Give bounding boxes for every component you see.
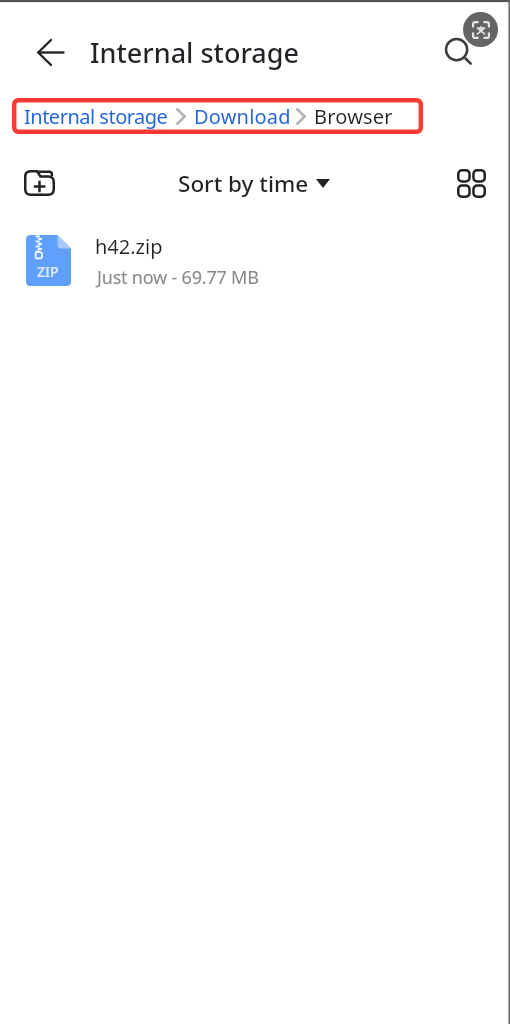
staticText: h42.zip [95,233,163,260]
button[interactable]: Internal storage [12,98,168,134]
staticText: Download [194,103,291,130]
button[interactable]: Translate [463,12,498,47]
staticText: Internal storage [90,34,299,71]
button[interactable]: New folder [14,157,65,208]
staticText: Sort by time [178,168,309,199]
staticText: Internal storage [24,103,168,130]
button[interactable]: Download [194,98,291,134]
staticText: Browser [314,103,393,130]
button[interactable]: Grid view [445,157,496,208]
button[interactable]: Search [434,27,488,81]
staticText: ZIP [37,262,59,281]
button[interactable]: Back [24,25,78,79]
button[interactable]: ZIP [0,215,510,307]
staticText: Just now - 69.77 MB [97,265,259,290]
button[interactable]: Sort by time [178,168,330,199]
